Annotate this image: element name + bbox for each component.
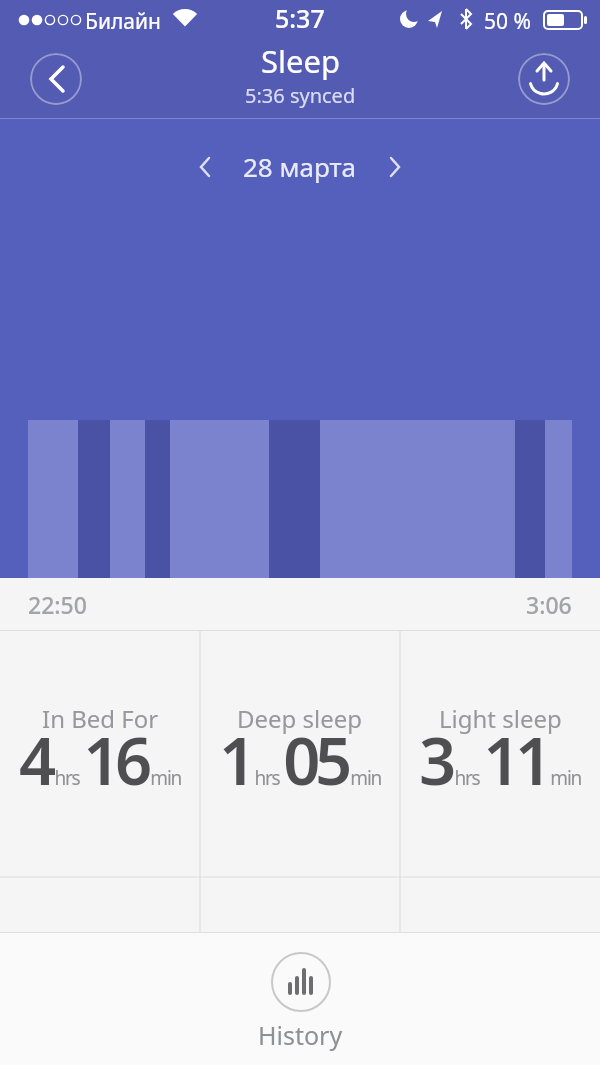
staticText: 4 hrs 16 min: [19, 716, 182, 805]
staticText: 3 hrs 11 min: [419, 716, 582, 805]
staticText: Билайн: [85, 7, 161, 36]
button[interactable]: [518, 53, 570, 105]
staticText: History: [258, 1018, 343, 1052]
staticText: Deep sleep: [237, 702, 363, 735]
staticText: 3:06: [526, 589, 572, 620]
staticText: Sleep: [261, 40, 341, 82]
staticText: 5:36 synced: [245, 82, 356, 109]
button[interactable]: 28 марта: [196, 149, 404, 184]
staticText: 5:37: [275, 1, 325, 35]
button[interactable]: Light sleep: [400, 630, 600, 933]
button[interactable]: Deep sleep: [200, 630, 400, 933]
staticText: 50 %: [484, 7, 531, 36]
staticText: Light sleep: [439, 702, 562, 735]
button[interactable]: History: [258, 952, 343, 1052]
staticText: 28 марта: [243, 149, 357, 184]
staticText: 22:50: [28, 589, 87, 620]
button[interactable]: [30, 53, 82, 105]
staticText: 1 hrs 05 min: [219, 716, 382, 805]
button[interactable]: In Bed For: [0, 630, 200, 933]
staticText: In Bed For: [42, 702, 159, 735]
